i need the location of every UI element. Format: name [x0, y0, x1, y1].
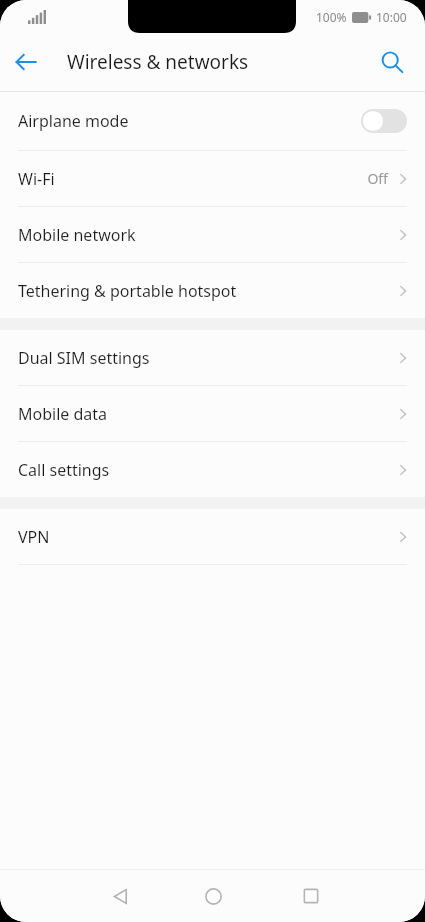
- button[interactable]: Search: [370, 40, 414, 84]
- staticText: 100%: [316, 9, 347, 25]
- staticText: Mobile network: [18, 224, 395, 246]
- button[interactable]: Mobile network: [0, 207, 425, 262]
- button[interactable]: Back: [0, 36, 52, 88]
- button[interactable]: Wi-Fi: [0, 151, 425, 206]
- staticText: Mobile data: [18, 403, 395, 425]
- button[interactable]: Back: [96, 872, 144, 920]
- button[interactable]: Dual SIM settings: [0, 330, 425, 385]
- button[interactable]: Home: [189, 872, 237, 920]
- staticText: Wireless & networks: [67, 49, 249, 75]
- staticText: Airplane mode: [18, 110, 361, 132]
- staticText: 10:00: [376, 9, 407, 25]
- staticText: Call settings: [18, 459, 395, 481]
- button[interactable]: Airplane mode: [0, 92, 425, 150]
- button[interactable]: Tethering & portable hotspot: [0, 263, 425, 318]
- button[interactable]: Call settings: [0, 442, 425, 497]
- staticText: VPN: [18, 526, 395, 548]
- staticText: Wi-Fi: [18, 168, 367, 190]
- button[interactable]: Mobile data: [0, 386, 425, 441]
- staticText: Dual SIM settings: [18, 347, 395, 369]
- button[interactable]: Recent apps: [287, 872, 335, 920]
- staticText: Tethering & portable hotspot: [18, 280, 395, 302]
- button[interactable]: VPN: [0, 509, 425, 564]
- staticText: Off: [367, 169, 388, 188]
